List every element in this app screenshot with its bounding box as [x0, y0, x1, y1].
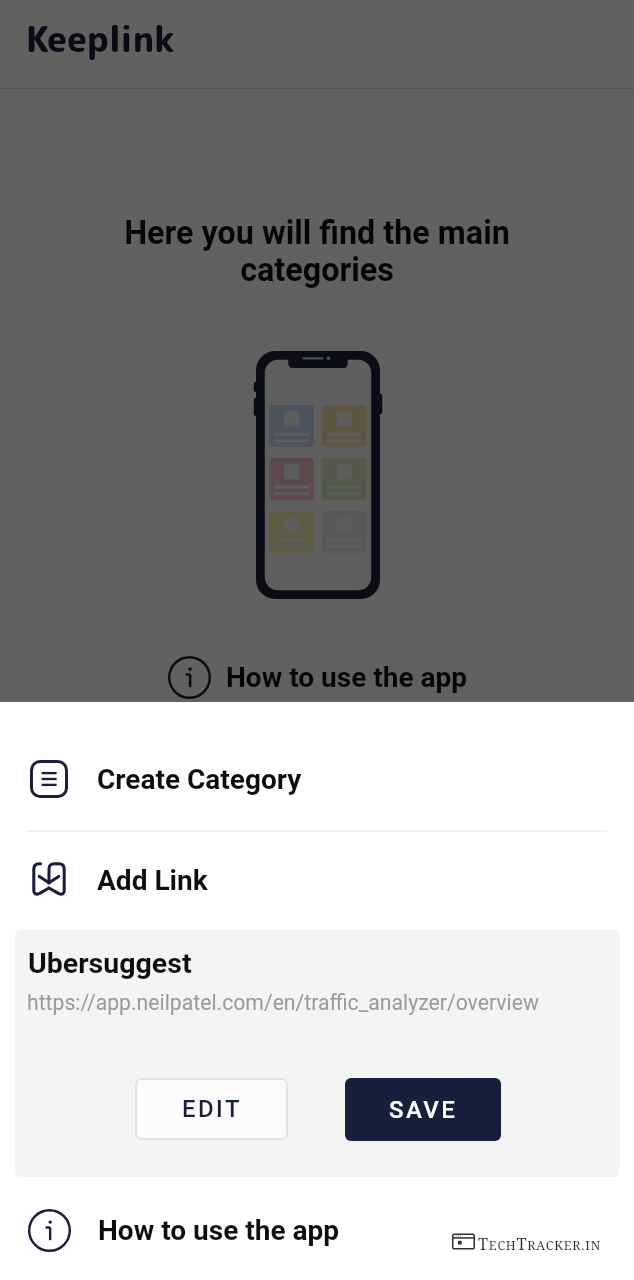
staticText: Ubersuggest	[28, 947, 192, 980]
button[interactable]: Add Link	[0, 850, 634, 910]
button[interactable]: EDIT	[135, 1078, 288, 1140]
staticText: TECHTRACKER.IN	[478, 1233, 601, 1255]
staticText: How to use the app	[98, 1214, 340, 1247]
staticText: Keeplink	[26, 14, 175, 63]
staticText: EDIT	[182, 1095, 242, 1123]
staticText: Create Category	[97, 763, 302, 796]
staticText: https://app.neilpatel.com/en/traffic_ana…	[27, 990, 539, 1015]
staticText: Add Link	[97, 864, 208, 897]
button[interactable]: How to use the app	[0, 1198, 634, 1262]
staticText: How to use the app	[226, 661, 468, 694]
staticText: Here you will find the main categories	[124, 214, 510, 289]
button[interactable]: Create Category	[0, 749, 634, 809]
button[interactable]: SAVE	[345, 1078, 501, 1141]
staticText: SAVE	[389, 1096, 458, 1124]
